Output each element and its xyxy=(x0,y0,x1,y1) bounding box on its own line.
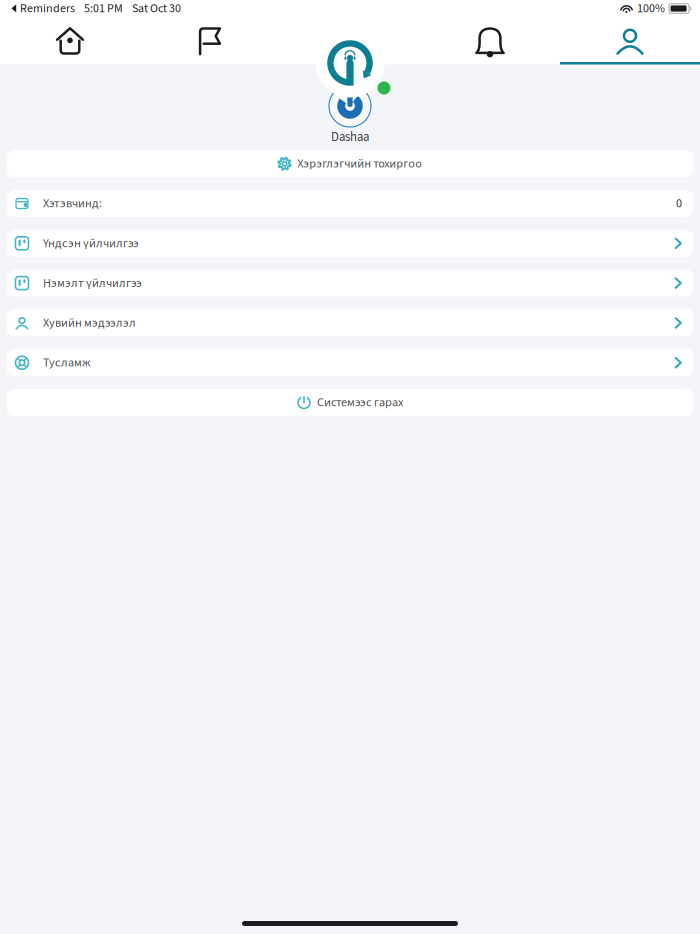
staticText: Хэрэглэгчийн тохиргоо xyxy=(297,155,422,172)
button[interactable]: Profile xyxy=(560,17,700,64)
staticText: 5:01 PM xyxy=(84,0,123,17)
staticText: Системээс гарах xyxy=(317,394,403,411)
button[interactable]: Support xyxy=(280,17,420,64)
staticText: Нэмэлт үйлчилгээ xyxy=(43,274,142,292)
staticText: Хувийн мэдээлэл xyxy=(43,314,136,332)
button[interactable]: Системээс гарах xyxy=(7,389,693,416)
button[interactable]: Үндсэн үйлчилгээ xyxy=(7,230,693,257)
staticText: 0 xyxy=(676,195,682,212)
staticText: 100% xyxy=(637,0,665,17)
staticText: Sat Oct 30 xyxy=(132,0,181,17)
staticText: Үндсэн үйлчилгээ xyxy=(43,235,139,252)
button[interactable]: Хэтэвчинд: xyxy=(7,190,693,217)
button[interactable]: Home xyxy=(0,17,140,64)
button[interactable]: Хэрэглэгчийн тохиргоо xyxy=(7,150,693,177)
button[interactable]: Тусламж xyxy=(7,349,693,376)
button[interactable]: Нэмэлт үйлчилгээ xyxy=(7,270,693,297)
staticText: Dashaa xyxy=(331,128,369,146)
button[interactable]: Flags xyxy=(140,17,280,64)
button[interactable]: Notifications xyxy=(420,17,560,64)
button[interactable]: Хувийн мэдээлэл xyxy=(7,309,693,336)
staticText: Тусламж xyxy=(43,354,90,371)
staticText: Хэтэвчинд: xyxy=(43,195,102,212)
staticText: Reminders xyxy=(20,0,75,17)
